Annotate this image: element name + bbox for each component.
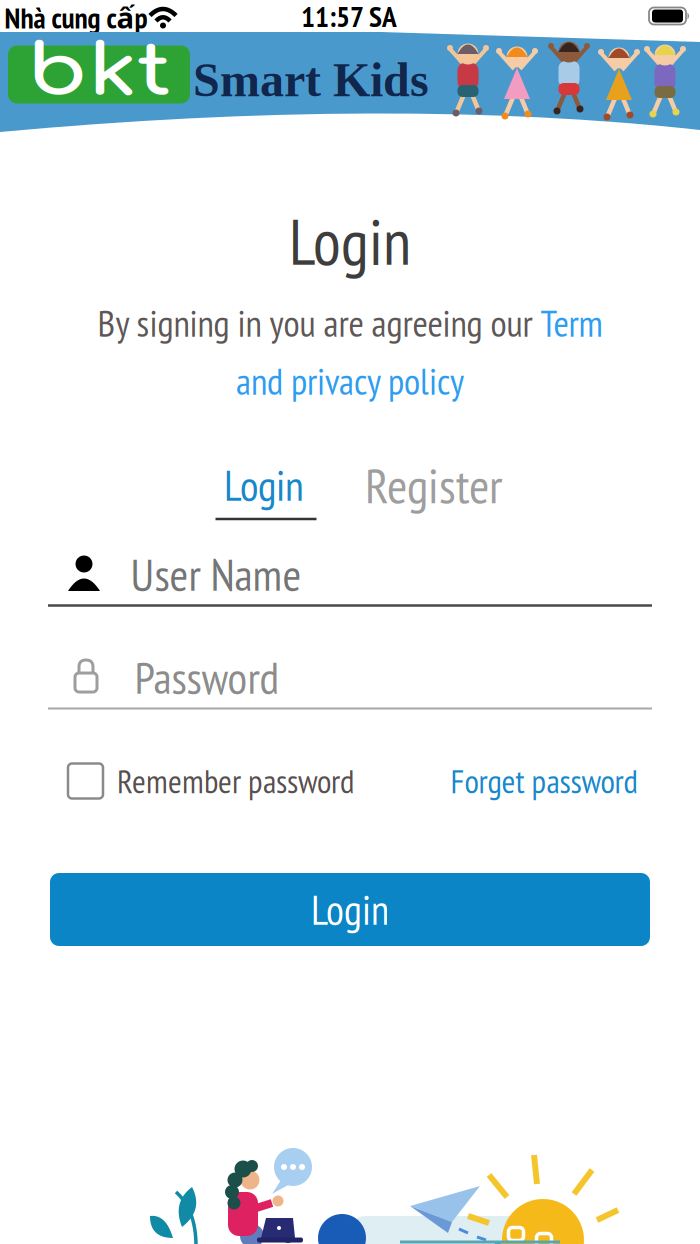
staticText: Forget password xyxy=(450,759,637,802)
button[interactable]: Login xyxy=(50,873,650,946)
staticText: Login xyxy=(311,883,389,936)
staticText: bkt xyxy=(40,33,158,111)
staticText: and privacy policy xyxy=(236,357,464,405)
staticText: Login xyxy=(224,457,304,513)
button[interactable]: Register xyxy=(354,459,514,511)
button[interactable]: Remember password xyxy=(68,759,354,802)
staticText: Remember password xyxy=(117,759,354,802)
staticText: Smart Kids xyxy=(193,53,429,107)
staticText: Term xyxy=(540,299,602,347)
button[interactable]: Term xyxy=(540,299,602,347)
staticText: 11:57 SA xyxy=(301,0,397,35)
staticText: Nhà cung cấp xyxy=(4,0,147,37)
staticText: Register xyxy=(365,453,503,517)
staticText: Password xyxy=(134,648,279,706)
staticText: User Name xyxy=(130,545,301,603)
staticText: Login xyxy=(289,200,411,282)
button[interactable]: and privacy policy xyxy=(236,357,464,405)
button[interactable]: Forget password xyxy=(450,759,637,802)
button[interactable]: Login xyxy=(209,459,319,511)
staticText: By signing in you are agreeing our xyxy=(97,299,540,347)
